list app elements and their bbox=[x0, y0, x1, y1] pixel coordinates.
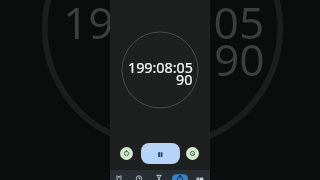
staticText: 199:08:05 bbox=[63, 0, 265, 52]
button[interactable]: Stopwatch bbox=[170, 170, 190, 180]
button[interactable]: Reset bbox=[120, 147, 133, 160]
button[interactable]: Pause bbox=[141, 143, 180, 164]
staticText: 90 bbox=[176, 70, 193, 89]
button[interactable]: Timer bbox=[149, 170, 169, 180]
staticText: 90 bbox=[214, 29, 265, 89]
staticText: 199:08:05 bbox=[128, 58, 193, 77]
button[interactable]: Clock bbox=[129, 170, 149, 180]
button[interactable]: Alarm bbox=[109, 170, 129, 180]
button[interactable]: Bedtime bbox=[190, 170, 210, 180]
button[interactable]: Lap bbox=[186, 147, 199, 160]
